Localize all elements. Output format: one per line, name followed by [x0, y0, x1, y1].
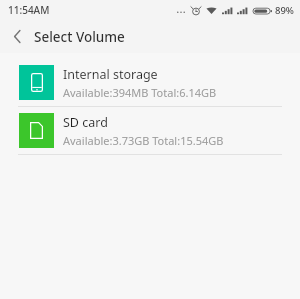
- button[interactable]: Back: [0, 20, 34, 53]
- staticText: Available:3.73GB Total:15.54GB: [63, 133, 224, 148]
- staticText: Internal storage: [63, 66, 158, 83]
- button[interactable]: SD card: [0, 107, 300, 154]
- staticText: 89%: [275, 4, 294, 17]
- button[interactable]: Internal storage: [0, 59, 300, 106]
- staticText: Available:394MB Total:6.14GB: [63, 85, 217, 100]
- staticText: SD card: [63, 114, 108, 131]
- staticText: 11:54AM: [8, 3, 50, 17]
- staticText: Select Volume: [34, 28, 125, 46]
